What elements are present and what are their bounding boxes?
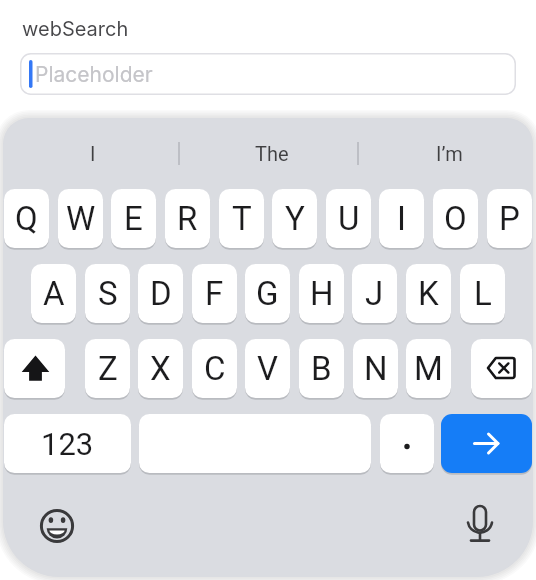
staticText: I’m	[436, 142, 463, 165]
staticText: N	[364, 349, 388, 388]
staticText: S	[98, 274, 118, 313]
staticText: B	[311, 349, 332, 388]
staticText: H	[310, 274, 334, 313]
staticText: 123	[41, 426, 94, 462]
staticText: G	[256, 274, 279, 313]
staticText: webSearch	[22, 17, 129, 41]
staticText: Z	[98, 349, 118, 388]
staticText: I	[90, 142, 96, 165]
staticText: Placeholder	[35, 62, 153, 87]
staticText: J	[365, 274, 384, 313]
staticText: L	[474, 274, 492, 313]
staticText: F	[205, 274, 224, 313]
staticText: The	[255, 142, 289, 165]
staticText: V	[257, 349, 279, 388]
staticText: Y	[285, 199, 305, 238]
staticText: Q	[15, 199, 38, 238]
staticText: R	[177, 199, 198, 238]
staticText: W	[66, 199, 96, 238]
staticText: O	[444, 199, 467, 238]
staticText: K	[418, 274, 439, 313]
staticText: U	[338, 199, 360, 238]
staticText: C	[204, 349, 226, 388]
staticText: X	[150, 349, 171, 388]
staticText: I	[397, 199, 406, 238]
staticText: A	[43, 274, 65, 313]
staticText: E	[124, 199, 143, 238]
staticText: P	[499, 199, 520, 238]
staticText: D	[150, 274, 172, 313]
staticText: M	[414, 349, 443, 388]
staticText: T	[232, 199, 252, 238]
